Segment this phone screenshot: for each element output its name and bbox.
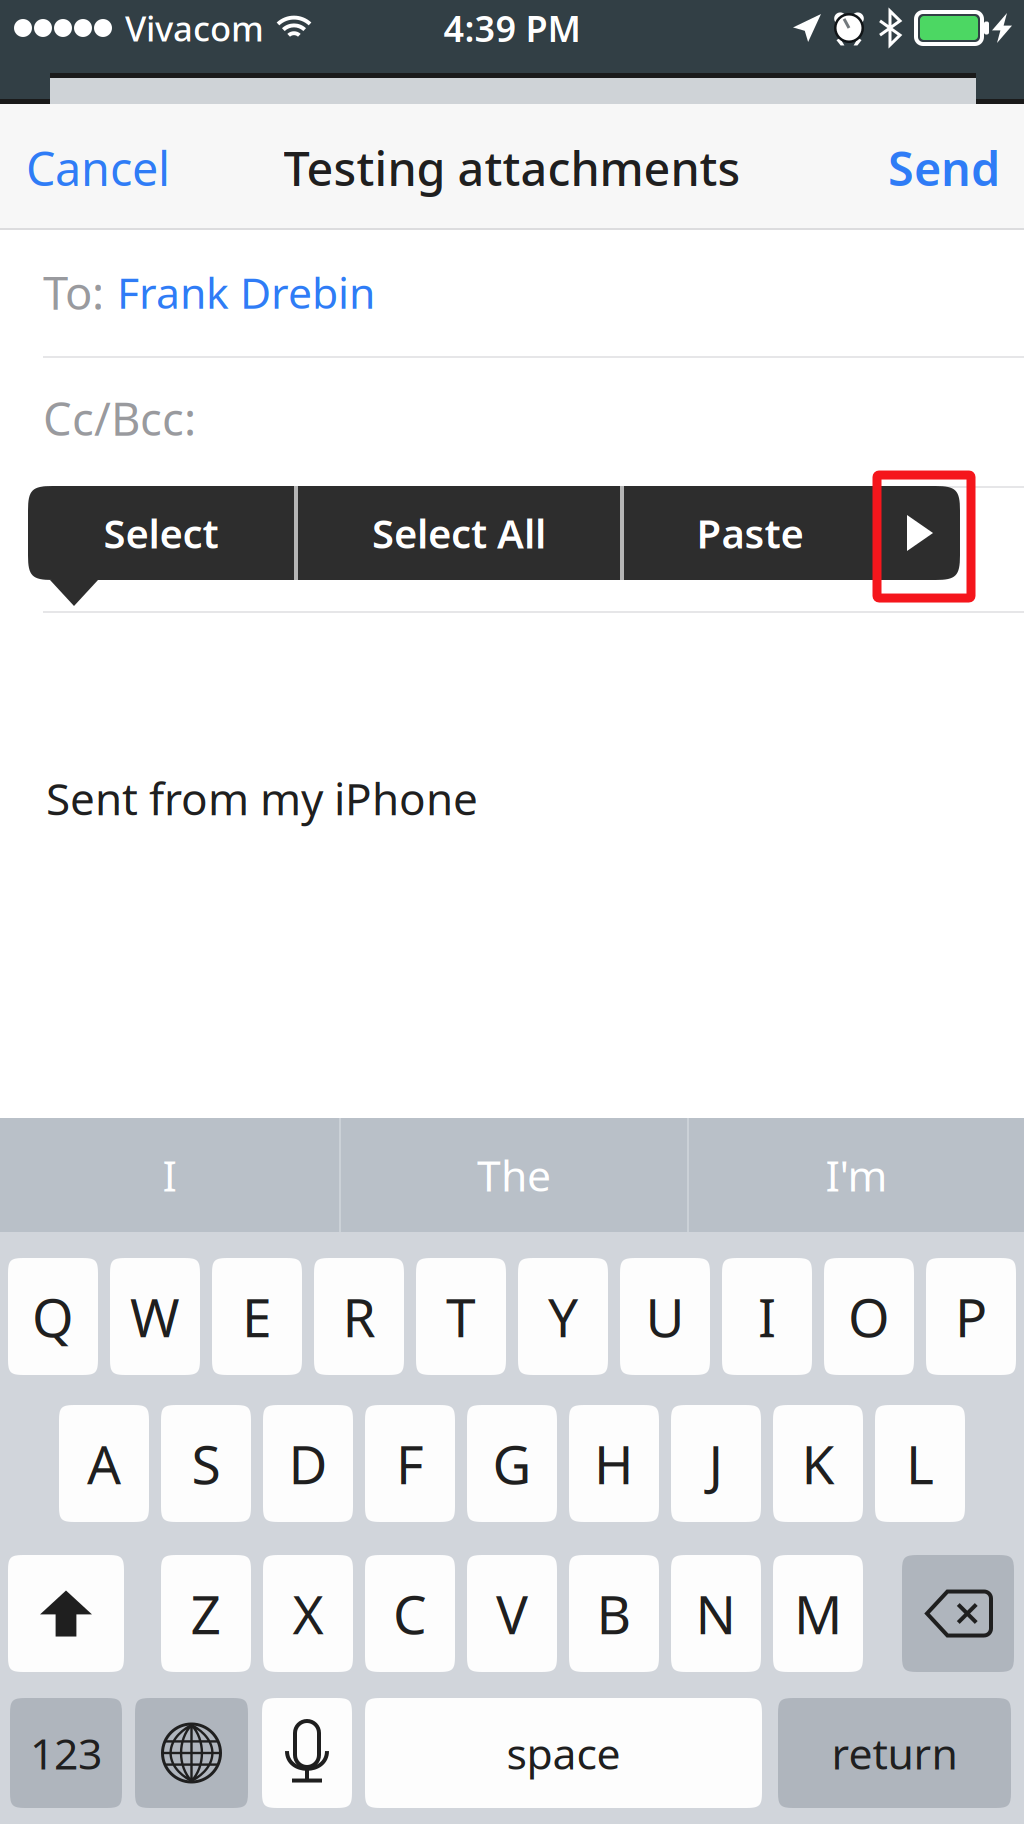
button[interactable]: Q (8, 1258, 98, 1375)
button[interactable]: Send (882, 121, 1006, 215)
staticText: I (162, 1147, 176, 1203)
staticText: The (477, 1147, 551, 1203)
button[interactable]: Paste (624, 486, 876, 580)
staticText: Select All (372, 506, 546, 559)
button[interactable]: P (926, 1258, 1016, 1375)
staticText: space (506, 1725, 620, 1781)
button[interactable]: F (365, 1405, 455, 1522)
staticText: Z (190, 1578, 221, 1649)
button[interactable]: Dictate (262, 1698, 352, 1808)
staticText: L (906, 1428, 934, 1499)
button[interactable]: N (671, 1555, 761, 1672)
staticText: To: (43, 262, 104, 322)
staticText: A (87, 1428, 121, 1499)
button[interactable]: space (365, 1698, 762, 1808)
button[interactable]: S (161, 1405, 251, 1522)
staticText: P (955, 1281, 987, 1352)
button[interactable]: T (416, 1258, 506, 1375)
staticText: M (794, 1578, 842, 1649)
staticText: Paste (696, 506, 803, 559)
staticText: H (594, 1428, 634, 1499)
staticText: Send (888, 137, 1000, 199)
staticText: Y (548, 1281, 578, 1352)
staticText: 4:39 PM (443, 4, 580, 52)
button[interactable]: return (778, 1698, 1011, 1808)
button[interactable]: More (880, 486, 960, 580)
button[interactable]: I'm (689, 1118, 1024, 1232)
button[interactable]: C (365, 1555, 455, 1672)
button[interactable]: V (467, 1555, 557, 1672)
staticText: Select (103, 506, 218, 559)
button[interactable]: W (110, 1258, 200, 1375)
button[interactable]: Cancel (20, 121, 176, 215)
staticText: V (496, 1578, 528, 1649)
button[interactable]: U (620, 1258, 710, 1375)
staticText: C (393, 1578, 427, 1649)
button[interactable]: I (722, 1258, 812, 1375)
button[interactable]: X (263, 1555, 353, 1672)
staticText: 123 (30, 1725, 102, 1781)
staticText: B (596, 1578, 631, 1649)
staticText: Testing attachments (283, 137, 740, 199)
button[interactable]: R (314, 1258, 404, 1375)
staticText: U (645, 1281, 684, 1352)
staticText: Cc/Bcc: (43, 388, 196, 448)
staticText: K (801, 1428, 834, 1499)
staticText: Q (32, 1281, 74, 1352)
staticText: R (342, 1281, 375, 1352)
button[interactable]: Next keyboard (135, 1698, 248, 1808)
button[interactable]: O (824, 1258, 914, 1375)
button[interactable]: Y (518, 1258, 608, 1375)
button[interactable]: Select (28, 486, 294, 580)
staticText: D (288, 1428, 327, 1499)
button[interactable]: A (59, 1405, 149, 1522)
staticText: return (831, 1725, 957, 1781)
staticText: J (708, 1428, 723, 1499)
staticText: E (242, 1281, 272, 1352)
staticText: F (396, 1428, 424, 1499)
button[interactable]: Select All (298, 486, 620, 580)
button[interactable]: 123 (10, 1698, 122, 1808)
staticText: I'm (825, 1147, 887, 1203)
staticText: Sent from my iPhone (46, 769, 478, 827)
staticText: Vivacom (125, 5, 264, 51)
staticText: Frank Drebin (117, 264, 375, 320)
button[interactable]: J (671, 1405, 761, 1522)
staticText: T (446, 1281, 476, 1352)
button[interactable]: B (569, 1555, 659, 1672)
button[interactable]: Z (161, 1555, 251, 1672)
button[interactable]: M (773, 1555, 863, 1672)
staticText: W (130, 1281, 180, 1352)
button[interactable]: E (212, 1258, 302, 1375)
button[interactable]: D (263, 1405, 353, 1522)
button[interactable]: The (341, 1118, 687, 1232)
button[interactable]: I (0, 1118, 339, 1232)
button[interactable]: L (875, 1405, 965, 1522)
staticText: I (758, 1281, 776, 1352)
staticText: S (191, 1428, 220, 1499)
button[interactable]: Shift (8, 1555, 124, 1672)
button[interactable]: K (773, 1405, 863, 1522)
button[interactable]: G (467, 1405, 557, 1522)
staticText: N (695, 1578, 736, 1649)
button[interactable]: Delete (902, 1555, 1014, 1672)
staticText: X (292, 1578, 323, 1649)
staticText: G (492, 1428, 531, 1499)
staticText: Cancel (26, 137, 170, 199)
button[interactable]: H (569, 1405, 659, 1522)
staticText: O (848, 1281, 890, 1352)
